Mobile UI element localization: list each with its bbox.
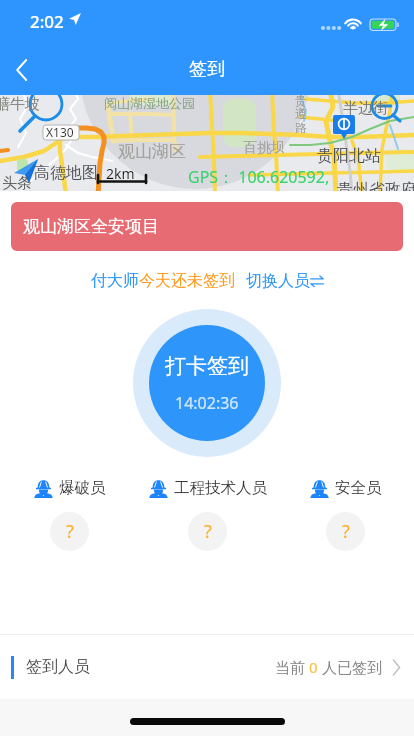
- button[interactable]: Map: [0, 95, 414, 191]
- button[interactable]: 安全员: [276, 477, 414, 551]
- staticText: 切换人员: [246, 271, 310, 291]
- staticText: 打卡签到: [165, 353, 249, 379]
- staticText: 贵 遵 路: [295, 95, 307, 136]
- staticText: ?: [204, 519, 212, 544]
- button[interactable]: 签到人员: [0, 635, 414, 699]
- staticText: 观山湖区全安项目: [23, 216, 159, 237]
- staticText: 头条: [2, 174, 32, 191]
- staticText: 0: [309, 657, 318, 677]
- staticText: 贵阳北站: [317, 146, 381, 166]
- button[interactable]: Back: [0, 48, 44, 92]
- staticText: 2:02: [30, 10, 64, 33]
- button[interactable]: 观山湖区全安项目: [11, 202, 403, 251]
- staticText: 安全员: [335, 478, 382, 498]
- staticText: 签到人员: [26, 657, 90, 677]
- staticText: ?: [342, 519, 350, 544]
- staticText: 观山湖区: [118, 141, 186, 162]
- staticText: 付大师: [91, 271, 139, 291]
- staticText: 百挑坝: [243, 139, 285, 157]
- button[interactable]: 切换人员: [246, 271, 324, 291]
- staticText: 当前: [275, 657, 309, 677]
- button[interactable]: 打卡签到: [149, 325, 265, 441]
- staticText: 人已签到: [318, 657, 382, 677]
- button[interactable]: 工程技术人员: [138, 477, 276, 551]
- staticText: 工程技术人员: [174, 478, 267, 498]
- staticText: 阅山湖湿地公园: [104, 95, 195, 111]
- staticText: GPS： 106.620592,: [188, 166, 330, 188]
- staticText: 14:02:36: [175, 392, 239, 414]
- staticText: 2km: [106, 164, 135, 183]
- button[interactable]: 爆破员: [0, 477, 138, 551]
- staticText: 签到: [189, 58, 225, 81]
- staticText: 贵州省政府: [337, 180, 414, 191]
- staticText: 高德地图: [34, 163, 98, 183]
- staticText: 今天还未签到: [139, 271, 235, 291]
- staticText: X130: [46, 124, 74, 140]
- staticText: 膳牛坡: [0, 95, 40, 114]
- staticText: 爆破员: [59, 478, 106, 498]
- staticText: 半边街: [343, 99, 388, 118]
- staticText: ?: [66, 519, 74, 544]
